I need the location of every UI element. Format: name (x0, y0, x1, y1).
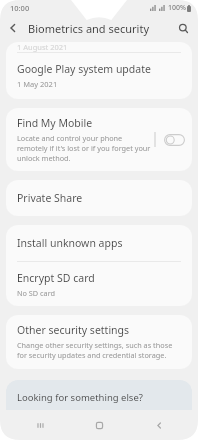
button[interactable]: Private Share (6, 180, 192, 216)
button[interactable]: Find My Mobile (6, 108, 192, 171)
staticText: Google Play system update (17, 62, 151, 76)
staticText: 10:00 (10, 3, 30, 13)
staticText: 100% (168, 3, 186, 13)
staticText: 1 August 2021 (17, 42, 68, 52)
button[interactable]: Find My Mobile toggle, off (156, 126, 192, 154)
button[interactable]: Recent apps (20, 411, 60, 439)
staticText: Change other security settings, such as … (17, 340, 183, 360)
staticText: Looking for something else? (17, 391, 143, 404)
staticText: Screen lock type (17, 413, 87, 425)
staticText: Install unknown apps (17, 236, 123, 250)
staticText: No SD card (17, 288, 56, 298)
button[interactable]: Navigate up (2, 17, 24, 39)
button[interactable]: 1 August 2021 (6, 42, 192, 52)
button[interactable]: Install unknown apps (6, 225, 192, 261)
staticText: Private Share (17, 191, 83, 205)
button[interactable]: Back (139, 411, 179, 439)
button[interactable]: Google Play system update (6, 53, 192, 89)
staticText: Other security settings (17, 323, 130, 337)
staticText: Locate and control your phone remotely i… (17, 133, 154, 163)
button[interactable]: Other security settings (6, 315, 192, 369)
staticText: 1 May 2021 (17, 79, 58, 89)
staticText: Encrypt SD card (17, 271, 95, 285)
button[interactable]: Search (173, 18, 193, 38)
button[interactable]: Home (79, 411, 119, 439)
button[interactable]: Encrypt SD card (6, 262, 192, 306)
staticText: Find My Mobile (17, 116, 93, 130)
button[interactable]: Screen lock type (17, 413, 181, 425)
staticText: Biometrics and security (28, 21, 149, 36)
